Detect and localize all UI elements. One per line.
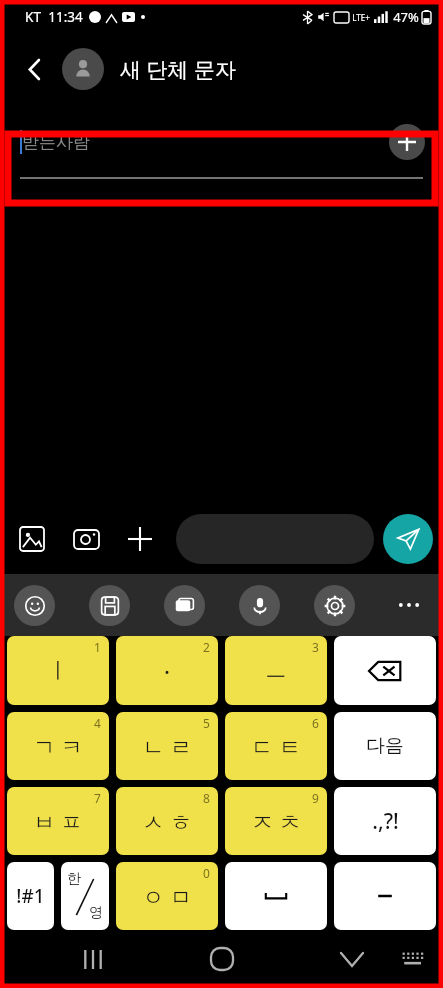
- staticText: ㅂ ㅍ: [33, 806, 83, 836]
- staticText: 47%: [393, 8, 419, 26]
- staticText: KT: [25, 8, 41, 26]
- button[interactable]: ㄱ ㅋ: [7, 712, 109, 780]
- staticText: 받는사람: [22, 132, 90, 153]
- button[interactable]: Gallery: [10, 517, 54, 561]
- staticText: ·: [164, 656, 170, 686]
- staticText: ㅅ ㅎ: [142, 806, 192, 836]
- button[interactable]: Dash: [334, 862, 436, 930]
- button[interactable]: Recents: [70, 936, 116, 982]
- staticText: !#1: [16, 883, 45, 909]
- button[interactable]: ㅂ ㅍ: [7, 787, 109, 855]
- button[interactable]: ㅅ ㅎ: [116, 787, 218, 855]
- button[interactable]: Hide keyboard: [329, 936, 375, 982]
- button[interactable]: More: [389, 585, 429, 625]
- staticText: 영: [89, 904, 103, 922]
- button[interactable]: Keyboard: [391, 936, 437, 982]
- staticText: 4: [94, 715, 101, 731]
- staticText: 1: [94, 639, 101, 655]
- button[interactable]: Contact: [62, 48, 104, 90]
- staticText: 8: [203, 790, 210, 806]
- button[interactable]: ㅈ ㅊ: [225, 787, 327, 855]
- staticText: ㅣ: [47, 657, 69, 685]
- staticText: LTE+: [352, 12, 370, 23]
- button[interactable]: 한: [61, 862, 109, 930]
- staticText: ㅈ ㅊ: [251, 806, 301, 836]
- staticText: ㄱ ㅋ: [33, 731, 83, 761]
- staticText: ㅡ: [265, 657, 287, 685]
- button[interactable]: Settings: [314, 585, 355, 626]
- button[interactable]: 다음: [334, 712, 436, 780]
- staticText: ㄷ ㅌ: [251, 731, 301, 761]
- button[interactable]: ㄴ ㄹ: [116, 712, 218, 780]
- staticText: 11:34: [48, 8, 83, 26]
- staticText: 새 단체 문자: [120, 55, 236, 84]
- staticText: 6: [312, 715, 319, 731]
- staticText: 한: [67, 870, 81, 888]
- staticText: .,?!: [372, 807, 399, 836]
- button[interactable]: .,?!: [334, 787, 436, 855]
- button[interactable]: Add recipient: [389, 124, 425, 160]
- button[interactable]: Backspace: [334, 636, 436, 705]
- staticText: 0: [203, 865, 210, 881]
- button[interactable]: Space: [225, 862, 327, 930]
- button[interactable]: Back: [14, 48, 56, 90]
- staticText: 7: [94, 790, 101, 806]
- staticText: 3: [312, 639, 319, 655]
- button[interactable]: 받는사람: [20, 104, 389, 179]
- staticText: 다음: [366, 734, 404, 758]
- button[interactable]: ㅇ ㅁ: [116, 862, 218, 930]
- button[interactable]: Emoji: [14, 585, 55, 626]
- button[interactable]: Home: [199, 936, 245, 982]
- button[interactable]: ㅡ: [225, 636, 327, 705]
- button[interactable]: ㄷ ㅌ: [225, 712, 327, 780]
- button[interactable]: !#1: [7, 862, 54, 930]
- staticText: 2: [203, 639, 210, 655]
- button[interactable]: Clipboard: [89, 585, 130, 626]
- button[interactable]: ·: [116, 636, 218, 705]
- button[interactable]: [176, 514, 374, 564]
- button[interactable]: Keyboard modes: [164, 585, 205, 626]
- staticText: 9: [312, 790, 319, 806]
- staticText: 5: [203, 715, 210, 731]
- button[interactable]: Send: [383, 514, 433, 564]
- button[interactable]: Voice input: [239, 585, 280, 626]
- staticText: ㅇ ㅁ: [142, 881, 192, 911]
- button[interactable]: Camera: [64, 517, 108, 561]
- staticText: ㄴ ㄹ: [142, 731, 192, 761]
- button[interactable]: ㅣ: [7, 636, 109, 705]
- button[interactable]: More options: [118, 517, 162, 561]
